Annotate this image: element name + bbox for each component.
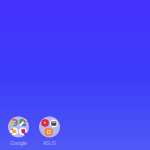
staticText: ASUS: [43, 139, 56, 147]
button[interactable]: Google: [6, 116, 30, 147]
staticText: Google: [10, 139, 27, 147]
button[interactable]: ASUS: [37, 116, 61, 147]
